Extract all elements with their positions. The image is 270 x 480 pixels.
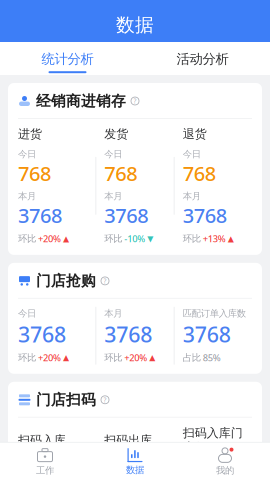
staticText: 768 <box>18 160 51 186</box>
staticText: 3768 <box>104 320 152 348</box>
staticText: 768 <box>183 160 216 186</box>
button[interactable]: 我的 <box>180 443 270 480</box>
staticText: 768 <box>104 160 137 186</box>
staticText: ▲ <box>63 353 69 362</box>
staticText: 本月 <box>18 190 36 202</box>
staticText: 环比 <box>183 233 201 244</box>
button[interactable]: 工作 <box>0 443 90 480</box>
staticText: +20% <box>124 351 147 364</box>
staticText: 3768 <box>18 320 66 348</box>
staticText: 数据 <box>116 13 154 36</box>
staticText: 扫码出库 <box>104 433 152 448</box>
staticText: 进货 <box>18 127 42 141</box>
staticText: 环比 <box>104 233 122 244</box>
staticText: 本月 <box>104 190 122 202</box>
staticText: 扫码入库门店数 <box>183 425 243 455</box>
staticText: 数据 <box>126 464 144 476</box>
staticText: ▲ <box>228 234 234 243</box>
staticText: 占比 <box>183 352 201 363</box>
staticText: 768 <box>104 466 137 480</box>
staticText: 环比 <box>104 352 122 363</box>
staticText: 本月 <box>104 308 122 319</box>
staticText: 退货 <box>183 127 207 141</box>
staticText: 门店扫码 <box>36 391 96 409</box>
staticText: 3768 <box>104 202 148 228</box>
staticText: +13% <box>203 232 226 245</box>
staticText: ▲ <box>149 353 155 362</box>
staticText: 门店抢购 <box>36 272 96 290</box>
staticText: 环比 <box>18 352 36 363</box>
staticText: 今日 <box>18 308 36 319</box>
staticText: 环比 <box>18 233 36 244</box>
staticText: ? <box>133 97 136 105</box>
staticText: ▲ <box>63 234 69 243</box>
staticText: +20% <box>38 232 61 245</box>
staticText: 经销商进销存 <box>36 92 126 110</box>
staticText: ? <box>103 276 106 285</box>
staticText: 今日 <box>104 148 122 160</box>
staticText: 发货 <box>104 127 128 141</box>
staticText: 今日 <box>18 148 36 160</box>
staticText: 统计分析 <box>41 51 93 67</box>
button[interactable]: 活动分析 <box>135 44 270 73</box>
staticText: 今日 <box>183 148 201 160</box>
staticText: ? <box>103 395 106 404</box>
staticText: -10% <box>124 232 145 245</box>
staticText: 3768 <box>18 202 62 228</box>
staticText: 匹配订单入库数 <box>183 308 246 319</box>
staticText: 85% <box>203 351 221 364</box>
staticText: 扫码入库 <box>18 433 66 448</box>
staticText: 活动分析 <box>176 51 228 67</box>
staticText: 我的 <box>216 465 234 476</box>
staticText: 本月 <box>183 190 201 202</box>
staticText: 768 <box>18 466 51 480</box>
button[interactable]: 数据 <box>90 443 180 480</box>
staticText: 3768 <box>183 320 231 348</box>
staticText: 3768 <box>183 202 227 228</box>
staticText: +20% <box>38 351 61 364</box>
staticText: ▼ <box>147 234 153 243</box>
staticText: 工作 <box>36 465 54 476</box>
button[interactable]: 统计分析 <box>0 44 135 73</box>
